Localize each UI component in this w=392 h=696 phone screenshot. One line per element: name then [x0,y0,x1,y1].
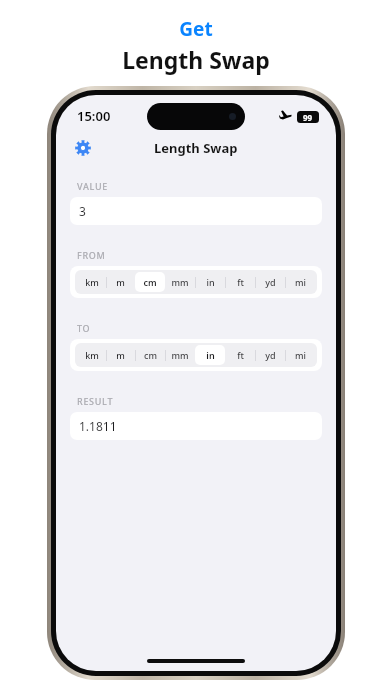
staticText: ft [237,276,244,288]
staticText: VALUE [77,180,108,192]
staticText: TO [77,322,91,334]
staticText: yd [265,349,276,361]
button[interactable]: m [106,272,135,292]
staticText: Length Swap [154,139,238,157]
button[interactable]: km [77,272,106,292]
staticText: mi [295,276,306,288]
staticText: 15:00 [77,107,111,125]
button[interactable]: yd [255,345,285,365]
button[interactable]: yd [255,272,285,292]
button[interactable]: mm [165,272,195,292]
staticText: in [206,276,215,288]
staticText: Get [179,16,213,42]
button[interactable]: km [77,345,106,365]
button[interactable]: ft [225,345,255,365]
button[interactable]: m [106,345,135,365]
button[interactable]: Settings [68,133,98,163]
staticText: m [116,276,125,288]
staticText: yd [265,276,276,288]
staticText: mi [295,349,306,361]
staticText: 3 [79,203,86,219]
staticText: ft [237,349,244,361]
staticText: mm [171,276,189,288]
button[interactable]: 3 [70,197,322,225]
staticText: FROM [77,249,106,261]
staticText: km [85,276,99,288]
button[interactable]: cm [135,345,165,365]
staticText: km [85,349,99,361]
button[interactable]: mi [285,272,315,292]
button[interactable]: mi [285,345,315,365]
button[interactable]: cm [135,272,165,292]
staticText: Length Swap [122,44,270,75]
staticText: 1.1811 [79,418,117,434]
button[interactable]: in [195,272,225,292]
button[interactable]: mm [165,345,195,365]
button[interactable]: ft [225,272,255,292]
button[interactable]: in [195,345,225,365]
button[interactable]: 1.1811 [70,412,322,440]
staticText: in [206,349,215,361]
staticText: 99 [303,112,313,123]
staticText: mm [171,349,189,361]
staticText: m [116,349,125,361]
staticText: cm [143,276,157,288]
staticText: RESULT [77,395,114,407]
staticText: cm [144,349,157,361]
